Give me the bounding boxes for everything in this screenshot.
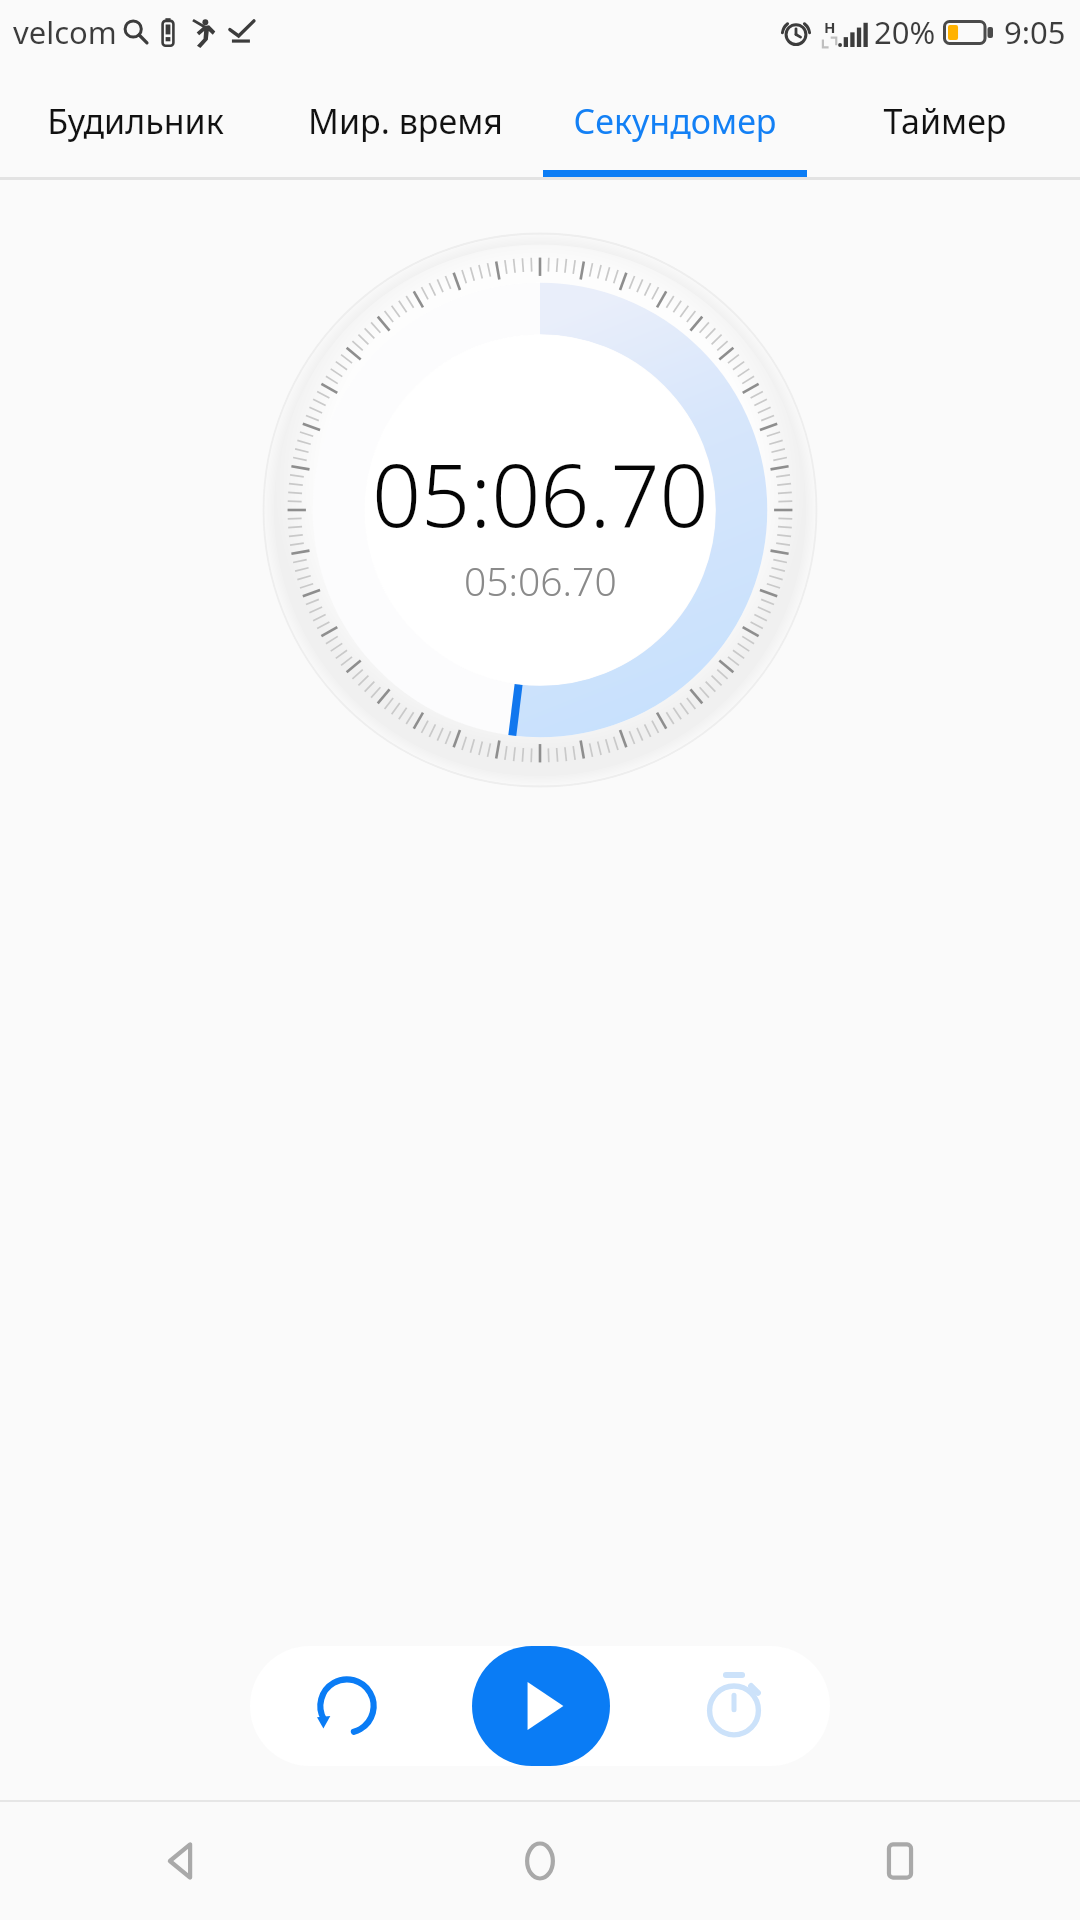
staticText: 05:06.70 [464,554,617,607]
button[interactable]: Будильник [0,64,270,177]
staticText: Секундомер [573,98,777,144]
button[interactable]: Lap [637,1646,830,1766]
button[interactable]: Мир. время [270,64,540,177]
staticText: 20% [874,11,936,53]
button[interactable]: Back [0,1802,360,1920]
button[interactable]: Reset [250,1646,444,1766]
button[interactable]: Home [360,1802,720,1920]
button[interactable]: Recents [720,1802,1080,1920]
staticText: Будильник [47,98,224,144]
button[interactable]: Таймер [810,64,1080,177]
staticText: H [824,17,836,37]
staticText: 05:06.70 [372,435,709,552]
staticText: velcom [13,11,117,53]
staticText: Таймер [883,98,1007,144]
staticText: Мир. время [308,98,503,144]
button[interactable]: Start [472,1646,610,1766]
button[interactable]: Секундомер [540,64,810,177]
staticText: 9:05 [1004,11,1066,53]
